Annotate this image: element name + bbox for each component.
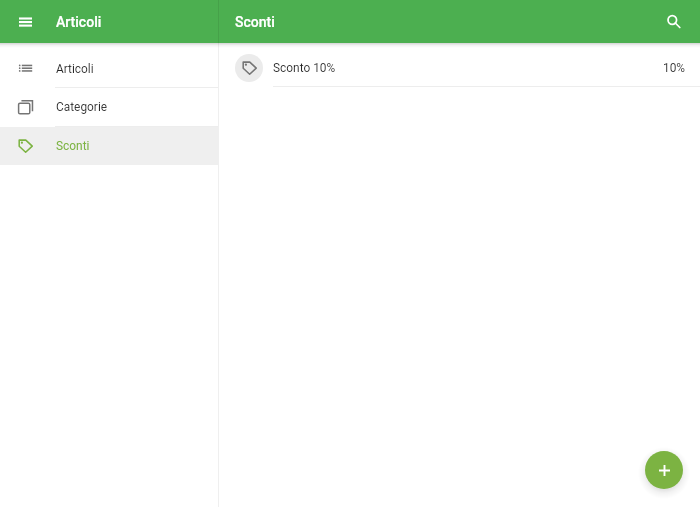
staticText: Articoli (56, 14, 102, 30)
button[interactable]: Sconti (0, 127, 218, 165)
button[interactable]: Articoli (0, 49, 218, 88)
button[interactable]: Add (645, 451, 683, 489)
staticText: Categorie (56, 100, 108, 114)
button[interactable]: Sconto 10% (219, 49, 700, 87)
staticText: 10% (663, 61, 686, 75)
staticText: Sconti (235, 14, 275, 30)
staticText: Sconto 10% (273, 61, 336, 75)
button[interactable]: Open navigation drawer (10, 6, 41, 37)
button[interactable]: Search (658, 6, 689, 37)
staticText: Sconti (56, 139, 90, 153)
staticText: Articoli (56, 62, 94, 76)
button[interactable]: Categorie (0, 87, 218, 126)
